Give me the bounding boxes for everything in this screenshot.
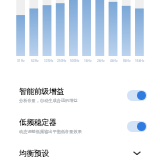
staticText: 31Hz bbox=[17, 59, 25, 63]
staticText: 低频稳定器 bbox=[19, 118, 57, 127]
button[interactable]: 开关 bbox=[127, 90, 147, 101]
button[interactable]: 开关 bbox=[127, 121, 147, 132]
staticText: 16kHz bbox=[135, 59, 145, 63]
staticText: 500Hz bbox=[70, 59, 80, 63]
staticText: 125Hz bbox=[44, 59, 54, 63]
staticText: 8kHz bbox=[123, 59, 131, 63]
staticText: 智能前级增益 bbox=[19, 87, 64, 96]
button[interactable]: 均衡预设 bbox=[0, 146, 160, 160]
staticText: 1kHz bbox=[84, 59, 92, 63]
staticText: 均衡预设 bbox=[19, 149, 49, 158]
button[interactable]: 低频稳定器 bbox=[0, 115, 160, 137]
staticText: 2kHz bbox=[97, 59, 105, 63]
staticText: 分析音量，自动生成合适的增益 bbox=[19, 98, 78, 103]
button[interactable]: 展开均衡预设 bbox=[131, 147, 143, 159]
button[interactable]: 智能前级增益 bbox=[0, 84, 160, 106]
staticText: 4kHz bbox=[110, 59, 118, 63]
staticText: 动态调整低频输出平衡低音量效果 bbox=[19, 129, 82, 134]
staticText: 62Hz bbox=[31, 59, 39, 63]
staticText: 250Hz bbox=[57, 59, 67, 63]
